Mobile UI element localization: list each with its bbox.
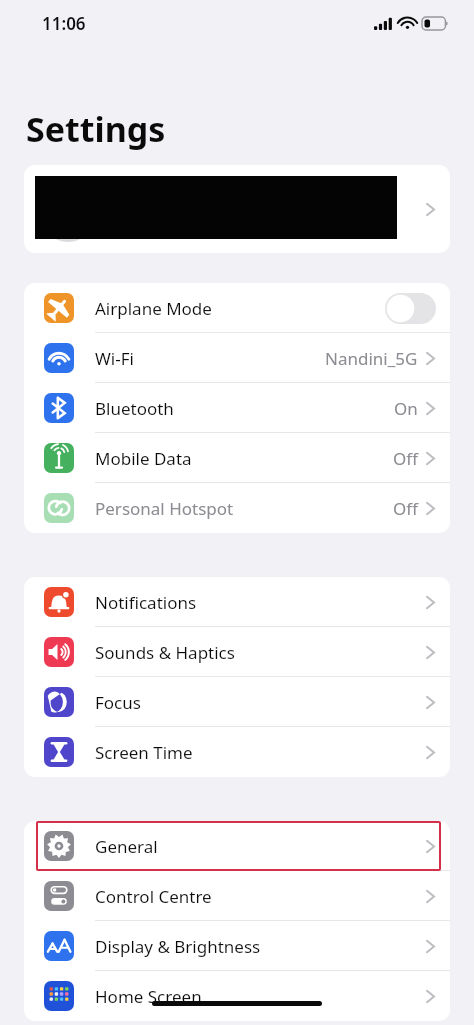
staticText: 11:06 — [42, 12, 86, 35]
button[interactable]: Wi-Fi — [24, 333, 450, 383]
staticText: Sounds & Haptics — [95, 641, 426, 664]
button[interactable]: Apple ID profile — [24, 165, 450, 253]
button[interactable]: Sounds & Haptics — [24, 627, 450, 677]
staticText: Airplane Mode — [95, 297, 385, 320]
button[interactable]: Personal Hotspot — [24, 483, 450, 533]
button[interactable]: Home Screen — [24, 971, 450, 1021]
staticText: On — [394, 397, 418, 420]
staticText: Off — [393, 497, 418, 520]
staticText: General — [95, 835, 426, 858]
button[interactable]: Airplane Mode toggle, off — [385, 293, 436, 324]
staticText: Mobile Data — [95, 447, 393, 470]
staticText: Notifications — [95, 591, 426, 614]
staticText: Personal Hotspot — [95, 497, 393, 520]
button[interactable]: Notifications — [24, 577, 450, 627]
button[interactable]: Control Centre — [24, 871, 450, 921]
staticText: Bluetooth — [95, 397, 394, 420]
staticText: Nandini_5G — [325, 347, 418, 370]
staticText: Wi-Fi — [95, 347, 325, 370]
button[interactable]: Focus — [24, 677, 450, 727]
staticText: Display & Brightness — [95, 935, 426, 958]
button[interactable]: Airplane Mode — [24, 283, 450, 333]
staticText: Control Centre — [95, 885, 426, 908]
staticText: Off — [393, 447, 418, 470]
button[interactable]: Mobile Data — [24, 433, 450, 483]
button[interactable]: Display & Brightness — [24, 921, 450, 971]
button[interactable]: Bluetooth — [24, 383, 450, 433]
button[interactable]: General — [24, 821, 450, 871]
staticText: Settings — [26, 106, 166, 152]
staticText: Home Screen — [95, 985, 426, 1008]
staticText: Screen Time — [95, 741, 426, 764]
button[interactable]: Screen Time — [24, 727, 450, 777]
staticText: Focus — [95, 691, 426, 714]
